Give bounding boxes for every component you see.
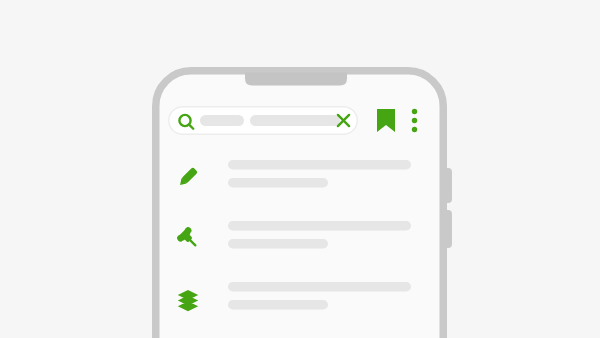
button[interactable]: Search <box>168 106 358 135</box>
button[interactable]: Bookmarks <box>373 105 401 135</box>
button[interactable]: Pinned note <box>160 209 440 270</box>
button[interactable]: Stacked notes <box>160 270 440 331</box>
button[interactable]: More options <box>404 105 426 135</box>
button[interactable]: Edit note <box>160 148 440 209</box>
button[interactable]: Clear search <box>331 108 356 133</box>
